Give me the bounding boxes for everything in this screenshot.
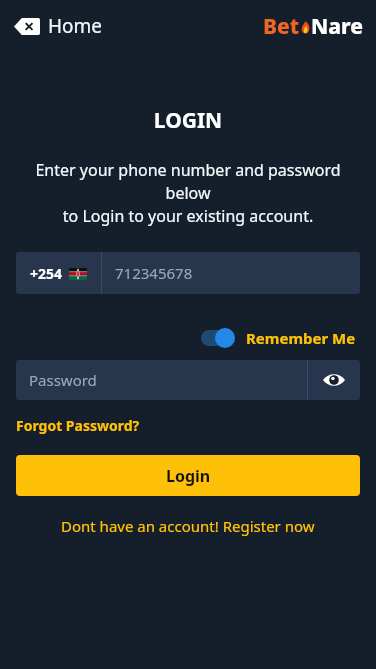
staticText: Password xyxy=(29,370,97,390)
staticText: Remember Me xyxy=(246,328,356,348)
button[interactable]: Forgot Password? xyxy=(16,416,140,435)
button[interactable]: Show password xyxy=(308,360,360,400)
button[interactable]: Login xyxy=(16,455,360,496)
staticText: LOGIN xyxy=(0,106,376,135)
staticText: Home xyxy=(48,13,103,39)
staticText: Forgot Password? xyxy=(16,416,140,435)
staticText: Login xyxy=(166,465,211,487)
staticText: +254 xyxy=(30,264,63,283)
button[interactable]: Password xyxy=(16,360,307,400)
button[interactable]: Back xyxy=(10,9,107,43)
button[interactable]: Remember Me xyxy=(197,324,360,352)
other: Back xyxy=(14,18,40,35)
staticText: Nare xyxy=(311,12,364,41)
staticText: Enter your phone number and password bel… xyxy=(14,159,362,227)
staticText: 712345678 xyxy=(115,263,193,283)
button[interactable]: Bet xyxy=(263,12,364,41)
button[interactable]: +254 xyxy=(16,252,360,294)
staticText: Bet xyxy=(263,12,300,41)
button[interactable]: Dont have an account! Register now xyxy=(53,512,323,540)
staticText: Dont have an account! Register now xyxy=(61,516,315,536)
